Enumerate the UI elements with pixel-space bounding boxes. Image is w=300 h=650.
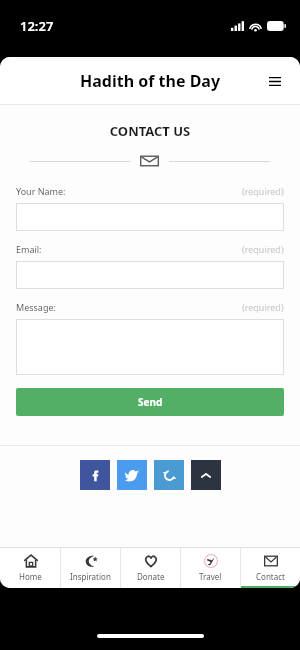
button[interactable]: Inspiration [61,548,120,588]
staticText: Donate [137,571,165,582]
button[interactable] [16,203,284,231]
staticText: Inspiration [70,571,111,582]
staticText: Contact [256,571,285,582]
staticText: CONTACT US [0,122,300,140]
staticText: Message: [16,301,56,313]
staticText: Travel [199,571,222,582]
button[interactable]: Scroll to top [191,460,221,490]
staticText: Hadith of the Day [80,70,221,92]
staticText: Send [138,395,163,409]
staticText: Home [19,571,42,582]
staticText: Email: [16,243,42,255]
staticText: (required) [242,243,284,255]
button[interactable]: Contact [241,548,300,588]
staticText: 12:27 [20,17,54,35]
button[interactable]: Menu [260,66,290,96]
button[interactable]: Donate [121,548,180,588]
button[interactable]: Twitter [117,460,147,490]
button[interactable]: Share [154,460,184,490]
button[interactable]: Travel [181,548,240,588]
button[interactable]: Facebook [80,460,110,490]
staticText: (required) [242,185,284,197]
staticText: (required) [242,301,284,313]
button[interactable] [16,319,284,375]
button[interactable]: Home [0,548,60,588]
button[interactable] [16,261,284,289]
staticText: Your Name: [16,185,66,197]
button[interactable]: Send [16,388,284,416]
